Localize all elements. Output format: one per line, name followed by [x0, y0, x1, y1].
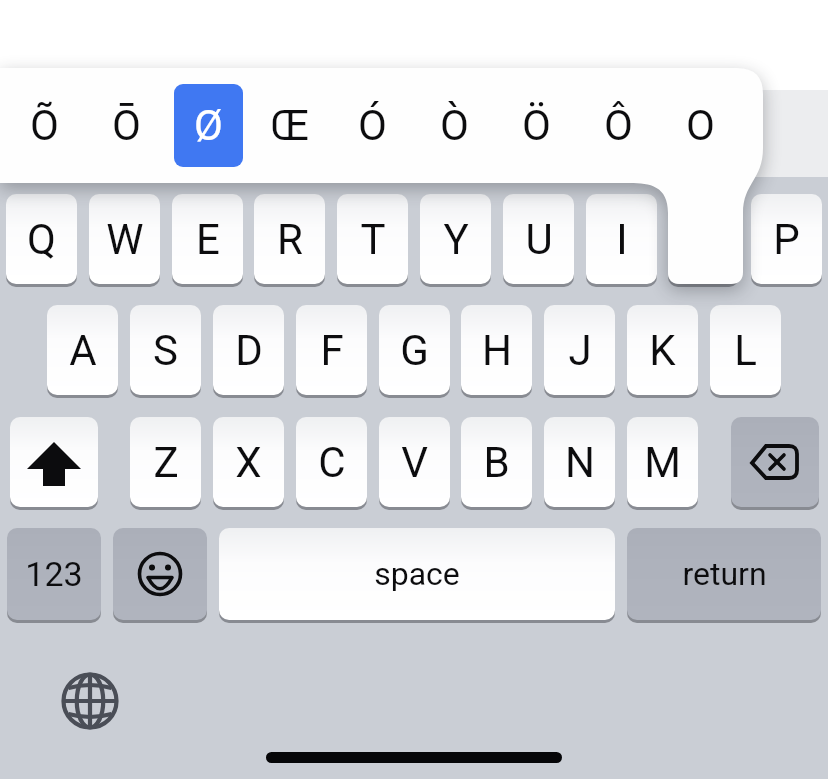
staticText: R — [277, 215, 303, 264]
button[interactable]: B — [461, 417, 532, 507]
staticText: D — [235, 326, 263, 375]
staticText: Y — [443, 215, 469, 264]
staticText: W — [106, 215, 144, 264]
button[interactable] — [10, 417, 98, 507]
staticText: G — [400, 326, 429, 375]
button[interactable]: F — [296, 305, 367, 395]
button[interactable]: V — [379, 417, 450, 507]
staticText: F — [320, 326, 344, 375]
button[interactable]: return — [627, 528, 821, 620]
button[interactable] — [58, 669, 122, 733]
button[interactable]: K — [627, 305, 698, 395]
staticText: Ö — [522, 101, 551, 150]
button[interactable]: D — [213, 305, 284, 395]
staticText: V — [401, 438, 428, 487]
button[interactable]: Q — [6, 194, 77, 284]
staticText: return — [682, 555, 767, 593]
staticText: M — [644, 438, 681, 487]
button[interactable]: P — [751, 194, 822, 284]
button[interactable]: S — [130, 305, 201, 395]
staticText: I — [616, 215, 628, 264]
button[interactable]: space — [219, 528, 615, 620]
button[interactable] — [174, 84, 243, 167]
staticText: K — [649, 326, 676, 375]
staticText: H — [482, 326, 512, 375]
button[interactable]: H — [461, 305, 532, 395]
button[interactable]: U — [503, 194, 574, 284]
staticText: Œ — [270, 101, 311, 150]
staticText: Ō — [112, 101, 141, 150]
button[interactable]: W — [89, 194, 160, 284]
button[interactable]: L — [710, 305, 781, 395]
button[interactable]: Ō — [91, 84, 161, 167]
button[interactable]: Ô — [583, 84, 653, 167]
button[interactable]: C — [296, 417, 367, 507]
staticText: Ó — [358, 101, 387, 150]
button[interactable]: E — [172, 194, 243, 284]
button[interactable]: I — [586, 194, 657, 284]
staticText: L — [734, 326, 757, 375]
button[interactable]: Ò — [419, 84, 489, 167]
button[interactable]: O — [665, 84, 735, 167]
button[interactable]: Ø — [173, 84, 243, 167]
button[interactable] — [731, 417, 819, 507]
staticText: C — [318, 438, 346, 487]
button[interactable]: Y — [420, 194, 491, 284]
staticText: A — [69, 326, 97, 375]
button[interactable]: 123 — [7, 528, 101, 620]
staticText: Q — [27, 215, 56, 264]
staticText: J — [568, 326, 592, 375]
staticText: Õ — [30, 101, 59, 150]
staticText: O — [686, 101, 715, 150]
button[interactable]: J — [544, 305, 615, 395]
staticText: Ø — [194, 101, 223, 150]
button[interactable]: X — [213, 417, 284, 507]
staticText: Ò — [440, 101, 469, 150]
button[interactable]: G — [379, 305, 450, 395]
staticText: P — [773, 215, 800, 264]
staticText: T — [360, 215, 386, 264]
button[interactable]: R — [254, 194, 325, 284]
button[interactable]: Ö — [501, 84, 571, 167]
button[interactable]: Ó — [337, 84, 407, 167]
button[interactable]: M — [627, 417, 698, 507]
button[interactable]: T — [337, 194, 408, 284]
staticText: Z — [153, 438, 179, 487]
staticText: S — [153, 326, 178, 375]
staticText: space — [374, 555, 460, 593]
staticText: X — [235, 438, 262, 487]
staticText: 123 — [25, 554, 83, 594]
staticText: N — [565, 438, 595, 487]
button[interactable]: N — [544, 417, 615, 507]
button[interactable] — [113, 528, 207, 620]
staticText: E — [196, 215, 220, 264]
button[interactable]: O — [668, 194, 739, 284]
staticText: B — [483, 438, 510, 487]
button[interactable]: Z — [130, 417, 201, 507]
button[interactable]: Œ — [255, 84, 325, 167]
staticText: U — [525, 215, 553, 264]
button[interactable]: Õ — [9, 84, 79, 167]
staticText: Ô — [604, 101, 633, 150]
button[interactable]: A — [47, 305, 118, 395]
